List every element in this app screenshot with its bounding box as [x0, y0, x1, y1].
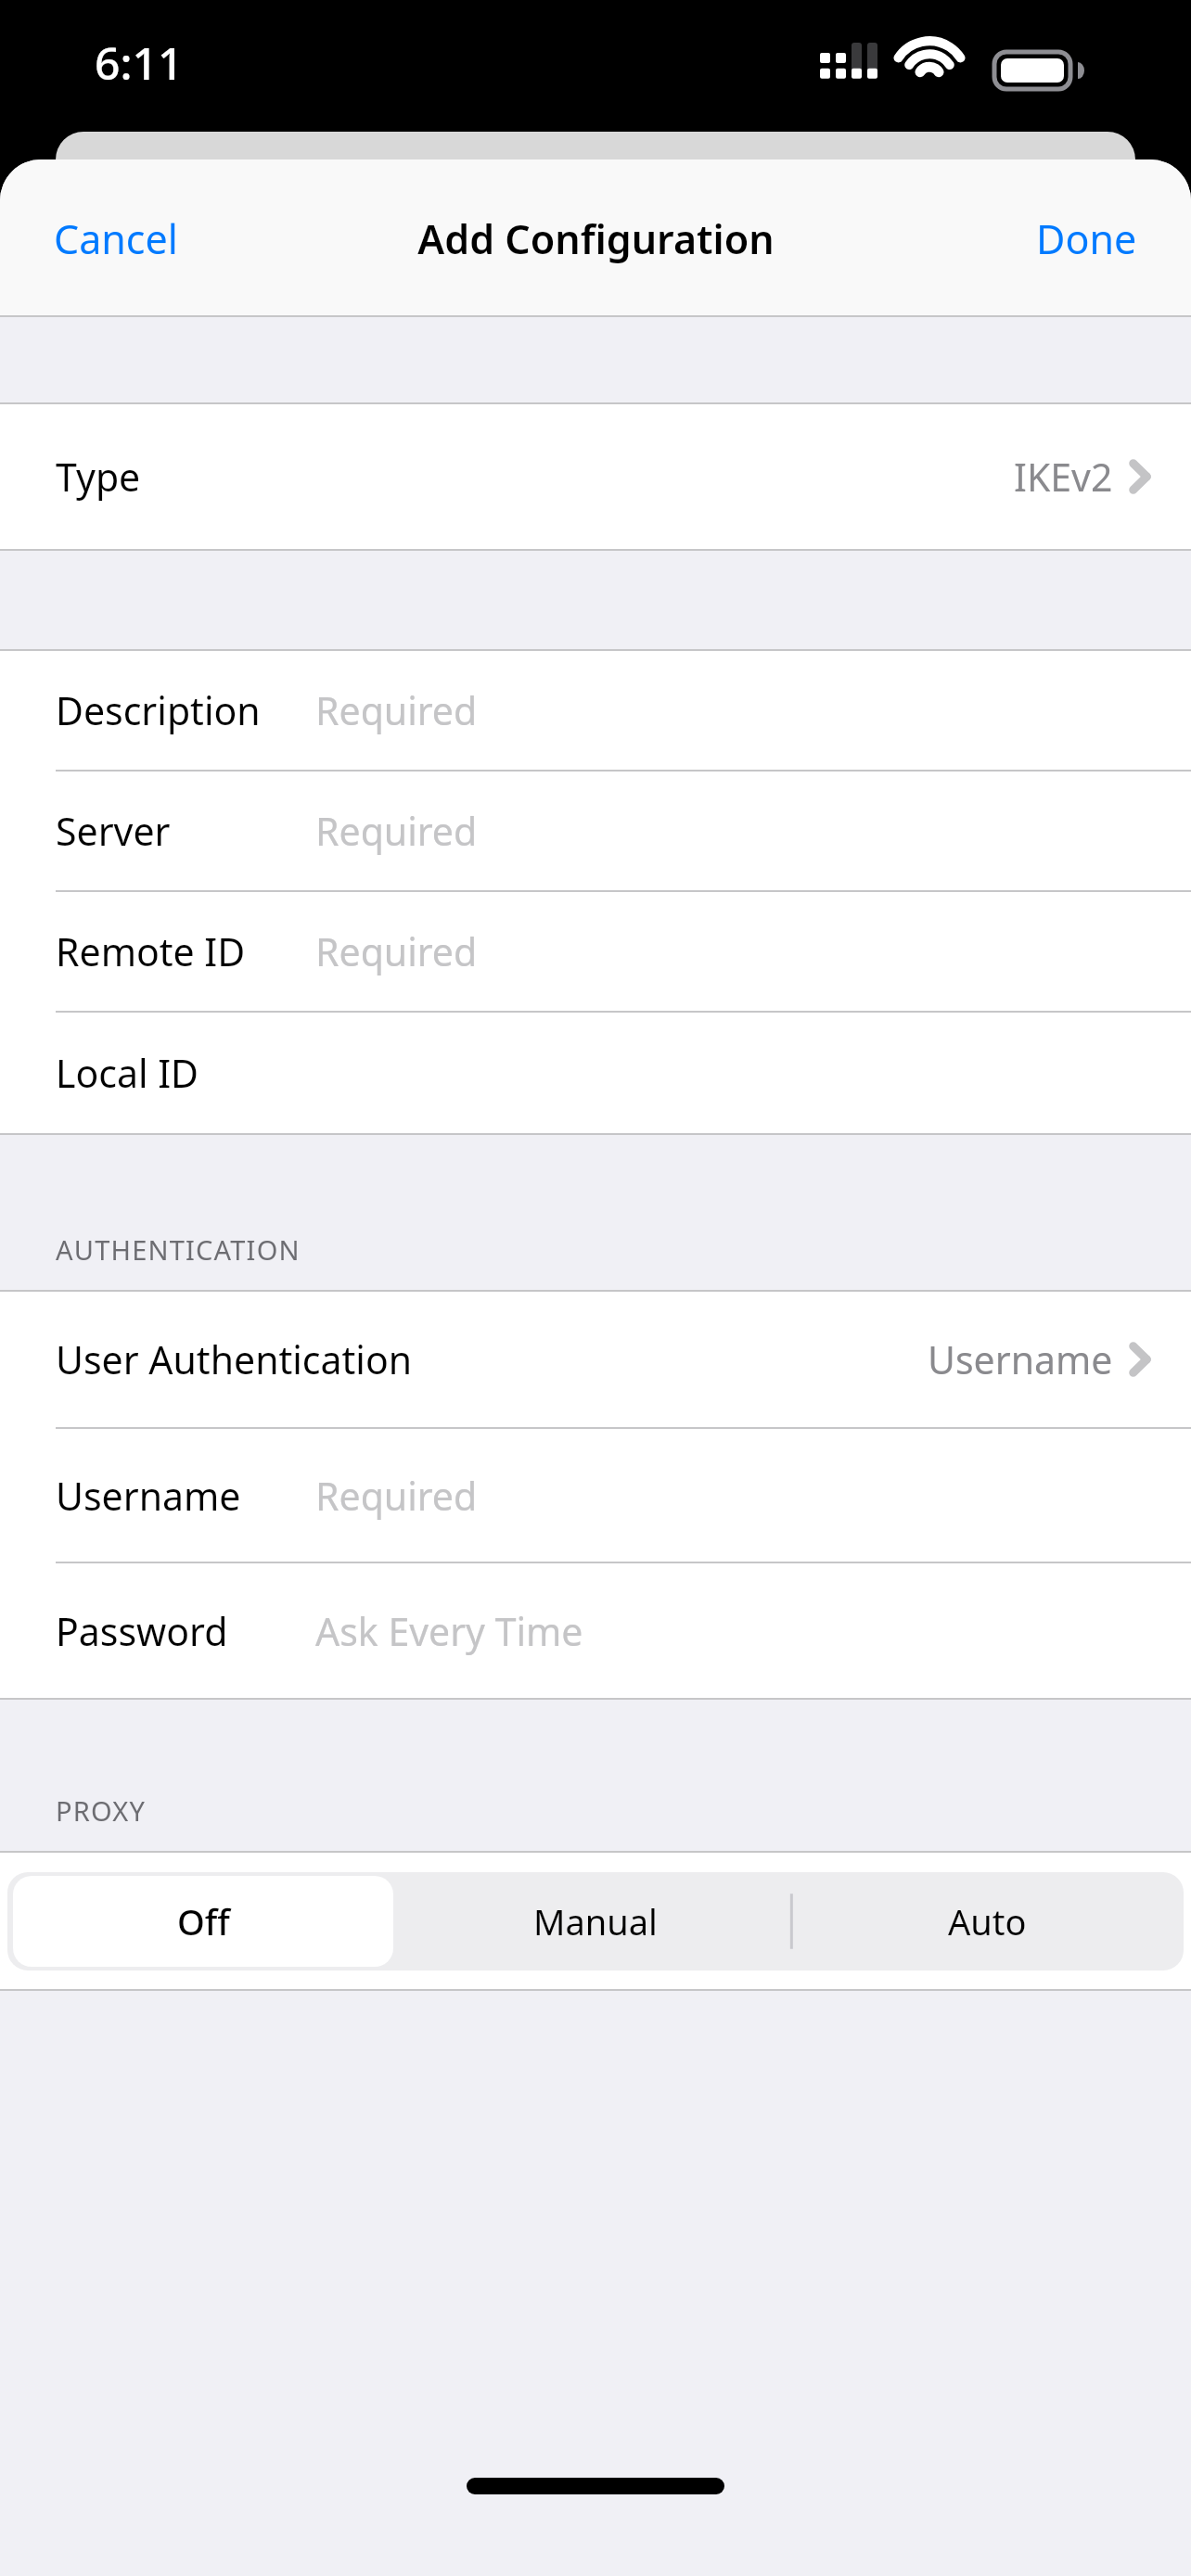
staticText: Username	[56, 1470, 241, 1522]
staticText: Manual	[533, 1897, 658, 1945]
staticText: Required	[315, 925, 478, 977]
button[interactable]: Description	[0, 651, 1191, 772]
staticText: Local ID	[56, 1047, 199, 1099]
staticText: Remote ID	[56, 925, 246, 977]
staticText: Auto	[948, 1897, 1027, 1945]
staticText: Required	[315, 684, 478, 736]
staticText: Cancel	[54, 211, 178, 266]
staticText: Username	[928, 1333, 1113, 1385]
staticText: IKEv2	[1014, 451, 1113, 503]
staticText: Required	[315, 1470, 478, 1522]
staticText: Add Configuration	[417, 211, 775, 266]
button[interactable]: Auto	[791, 1872, 1184, 1970]
staticText: Type	[56, 451, 141, 503]
staticText: Description	[56, 684, 261, 736]
staticText: Off	[177, 1897, 230, 1945]
button[interactable]: Manual	[399, 1872, 791, 1970]
staticText: Server	[56, 805, 171, 857]
button[interactable]: Done	[982, 159, 1191, 317]
button[interactable]: Off	[7, 1872, 399, 1970]
button[interactable]: Password	[0, 1563, 1191, 1698]
button[interactable]: Username	[0, 1429, 1191, 1563]
staticText: User Authentication	[56, 1333, 413, 1385]
staticText: Required	[315, 805, 478, 857]
button[interactable]: User Authentication	[0, 1292, 1191, 1429]
staticText: Password	[56, 1605, 228, 1657]
staticText: AUTHENTICATION	[56, 1231, 301, 1268]
staticText: 6:11	[95, 32, 184, 93]
button[interactable]: Remote ID	[0, 892, 1191, 1013]
staticText: PROXY	[56, 1792, 147, 1829]
staticText: Done	[1036, 211, 1137, 266]
button[interactable]: Cancel	[0, 159, 232, 317]
button[interactable]: Type	[0, 404, 1191, 549]
staticText: Ask Every Time	[315, 1605, 583, 1657]
button[interactable]: Server	[0, 772, 1191, 892]
button[interactable]: Local ID	[0, 1013, 1191, 1133]
